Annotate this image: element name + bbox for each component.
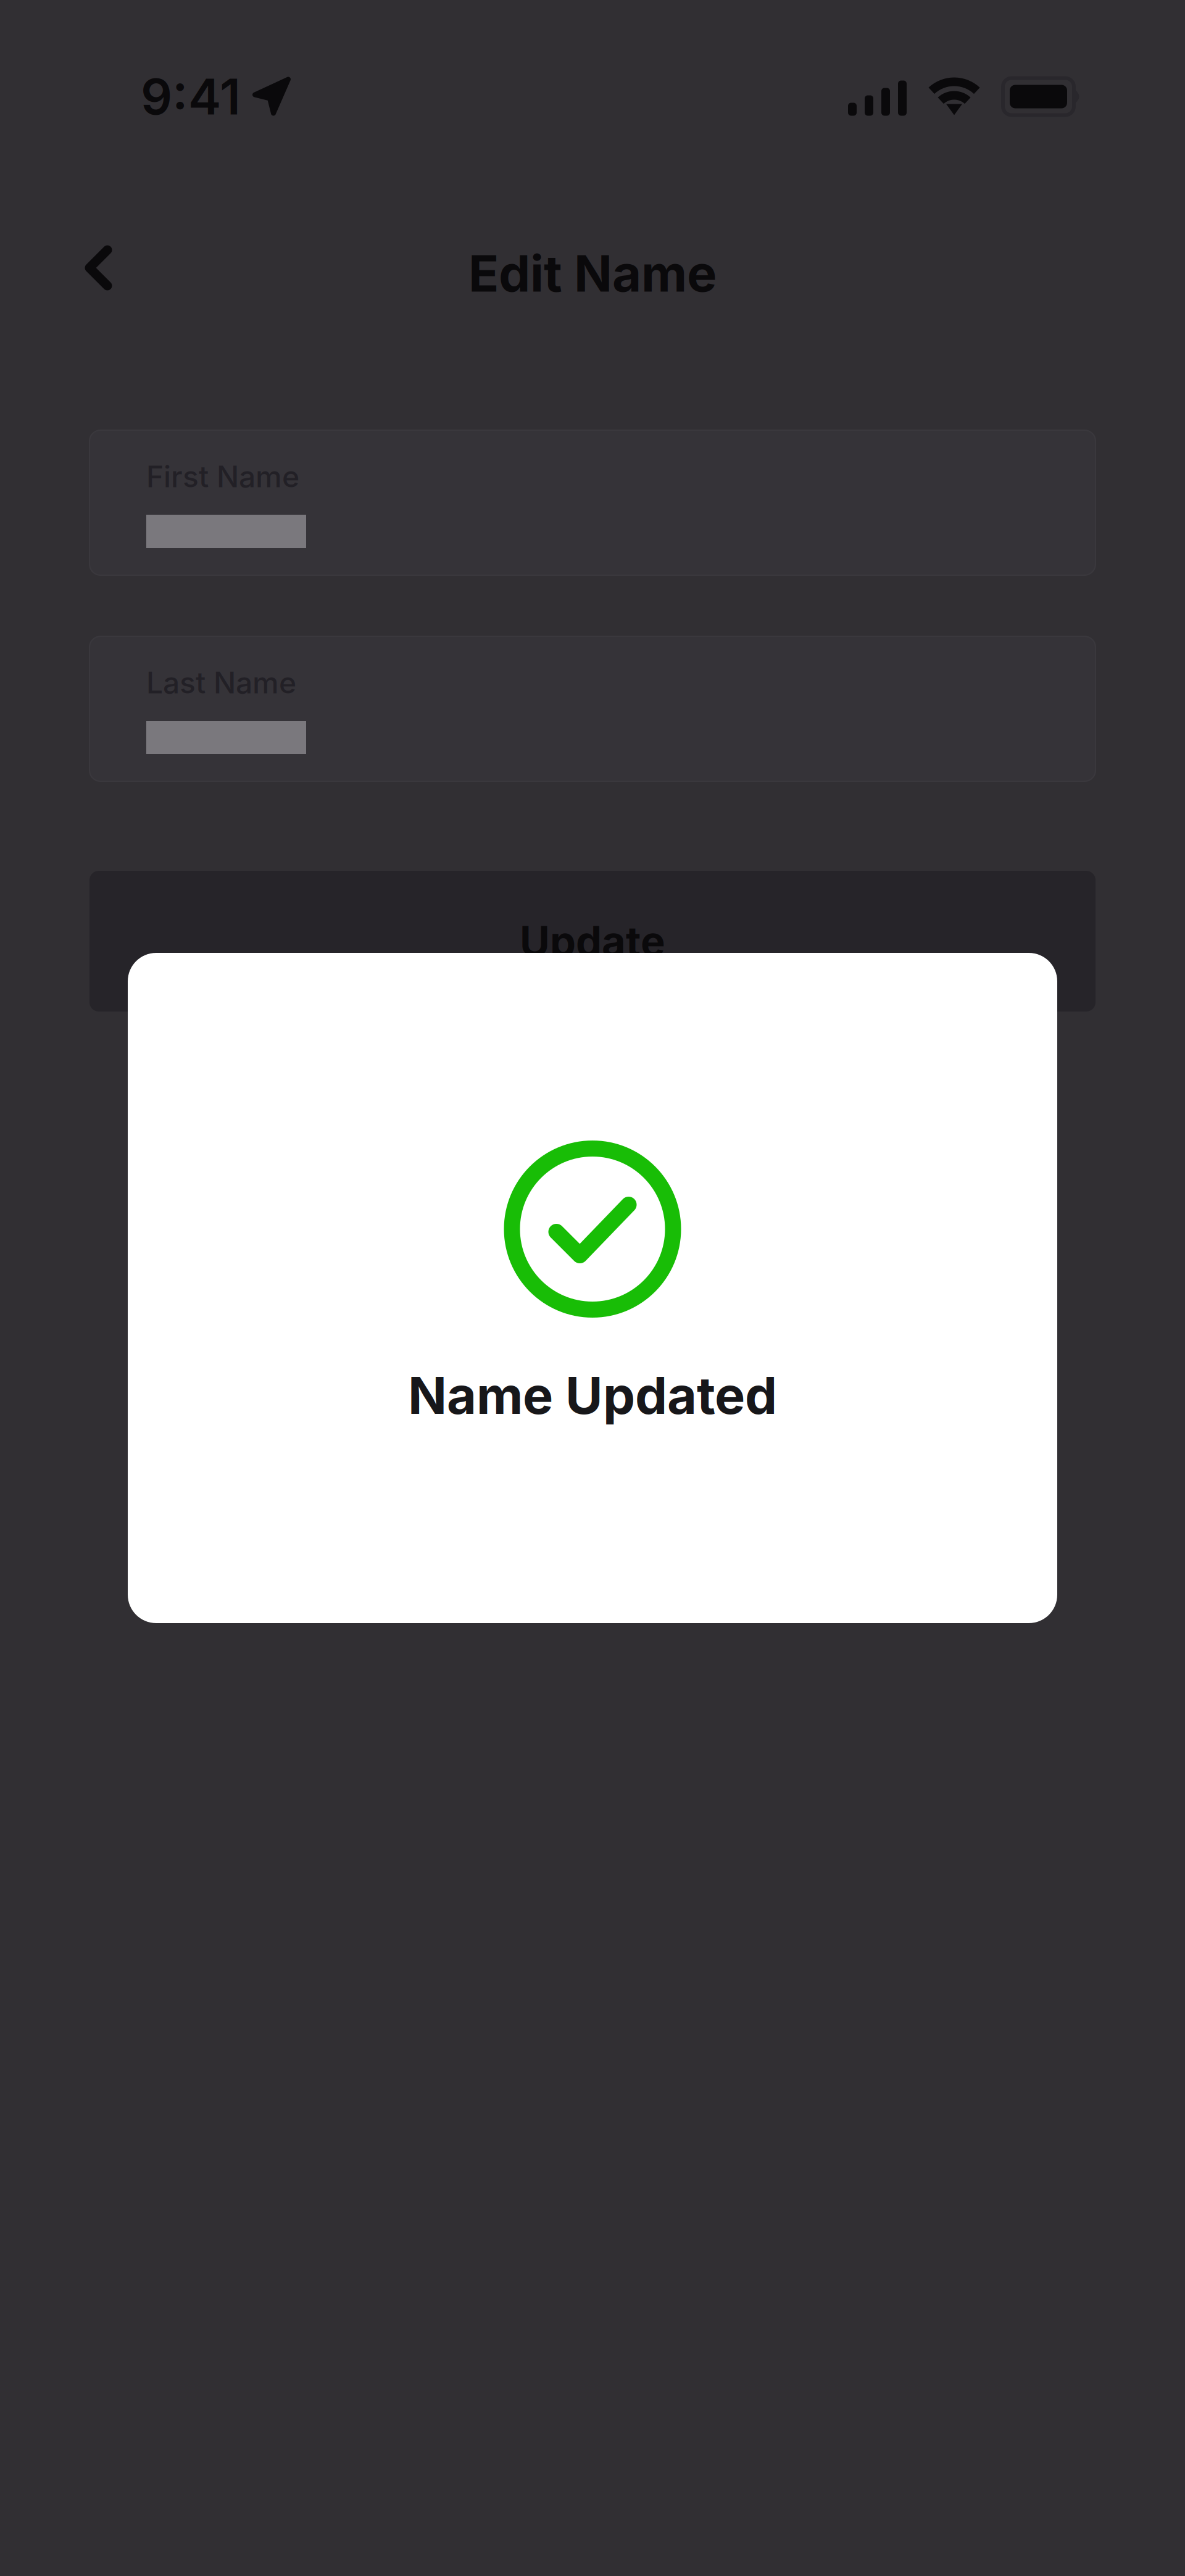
staticText: Edit Name [468, 243, 717, 304]
button[interactable]: Update [89, 871, 1096, 1012]
staticText: 9:41 [141, 67, 241, 126]
staticText: Update [520, 916, 665, 966]
staticText: Name Updated [408, 1365, 777, 1426]
staticText: Last Name [146, 665, 296, 701]
staticText: First Name [146, 459, 299, 494]
button[interactable]: Back [0, 222, 150, 314]
